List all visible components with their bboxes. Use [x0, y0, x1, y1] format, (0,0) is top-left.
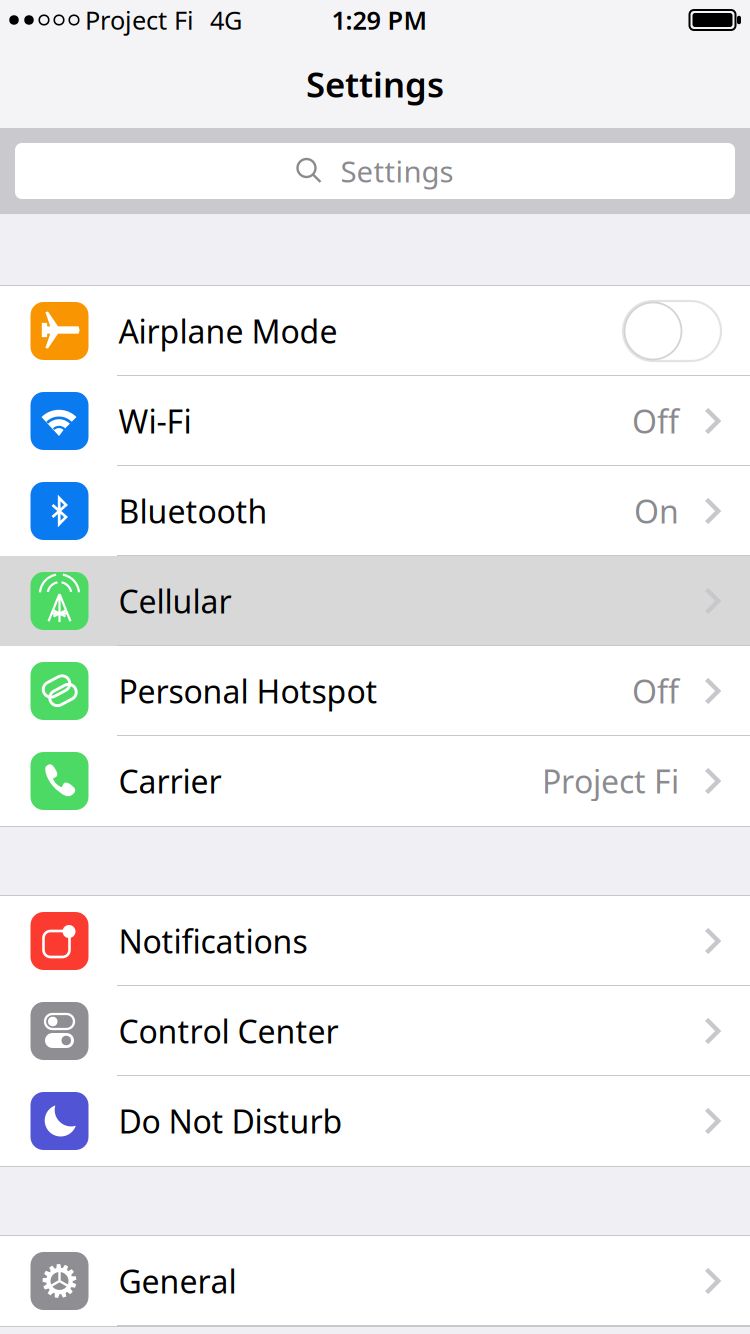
staticText: Airplane Mode	[118, 310, 337, 352]
staticText: 4G	[210, 3, 242, 37]
staticText: Notifications	[118, 920, 307, 962]
staticText: General	[118, 1260, 236, 1302]
staticText: 1:29 PM	[331, 3, 427, 37]
button[interactable]: General	[0, 1236, 750, 1326]
staticText: Project Fi	[542, 760, 679, 802]
button[interactable]: Settings	[15, 143, 735, 199]
staticText: Project Fi	[85, 3, 194, 37]
staticText: Personal Hotspot	[118, 670, 377, 712]
button[interactable]: Control Center	[0, 986, 750, 1076]
button[interactable]: Settings	[0, 40, 750, 128]
staticText: Settings	[306, 61, 444, 107]
button[interactable]: Cellular	[0, 556, 750, 646]
button[interactable]: Bluetooth	[0, 466, 750, 556]
button[interactable]: Personal Hotspot	[0, 646, 750, 736]
staticText: On	[634, 490, 679, 532]
button[interactable]: Airplane Mode	[0, 286, 750, 376]
staticText: Cellular	[118, 580, 231, 622]
staticText: Control Center	[118, 1010, 338, 1052]
button[interactable]: Carrier	[0, 736, 750, 826]
staticText: Settings	[340, 151, 453, 190]
staticText: Do Not Disturb	[118, 1100, 342, 1142]
button[interactable]: Do Not Disturb	[0, 1076, 750, 1166]
button[interactable]: Wi-Fi	[0, 376, 750, 466]
staticText: Bluetooth	[118, 490, 267, 532]
staticText: Off	[632, 400, 679, 442]
staticText: Carrier	[118, 760, 221, 802]
button[interactable]: Notifications	[0, 896, 750, 986]
staticText: Off	[632, 670, 679, 712]
staticText: Wi-Fi	[118, 400, 191, 442]
